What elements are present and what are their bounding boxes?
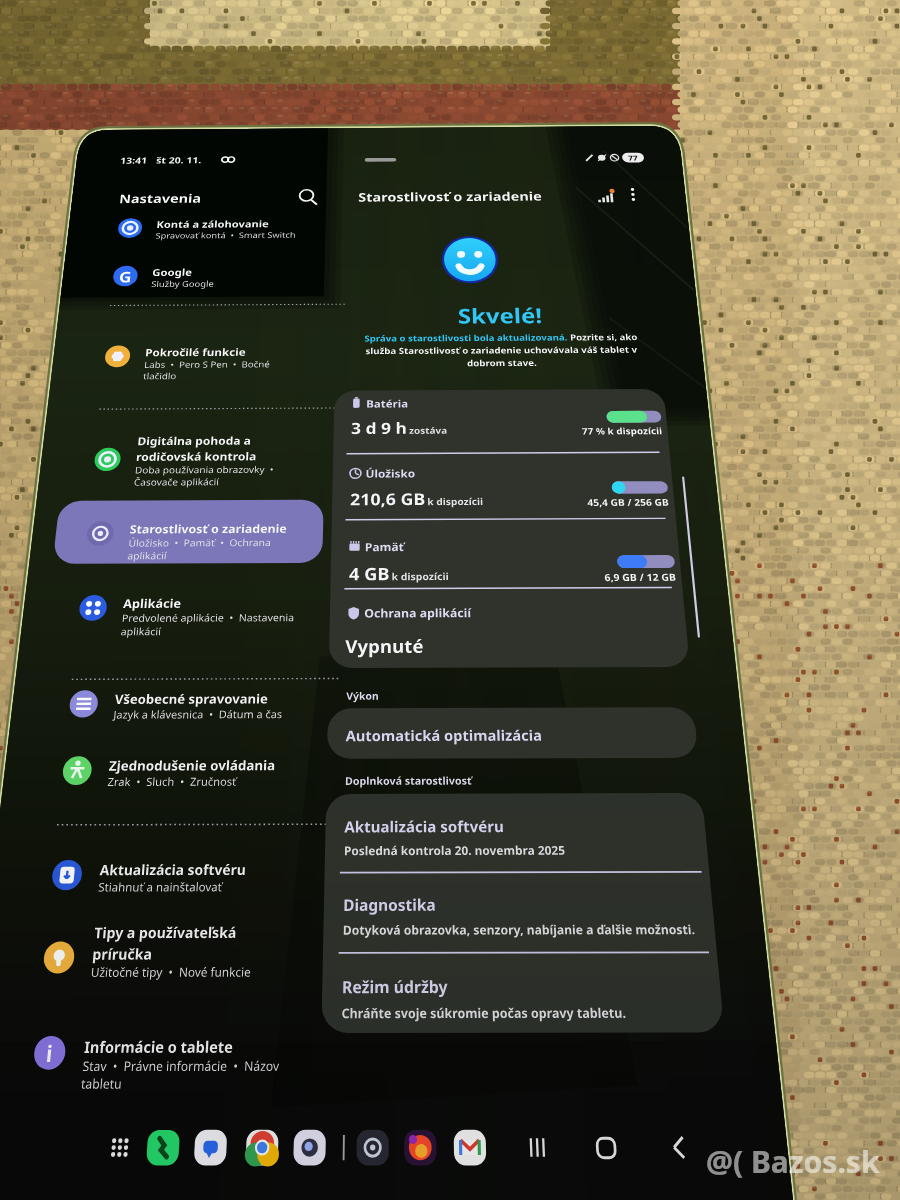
button[interactable]: Tablet showing Device care settings: [0, 0, 900, 1200]
